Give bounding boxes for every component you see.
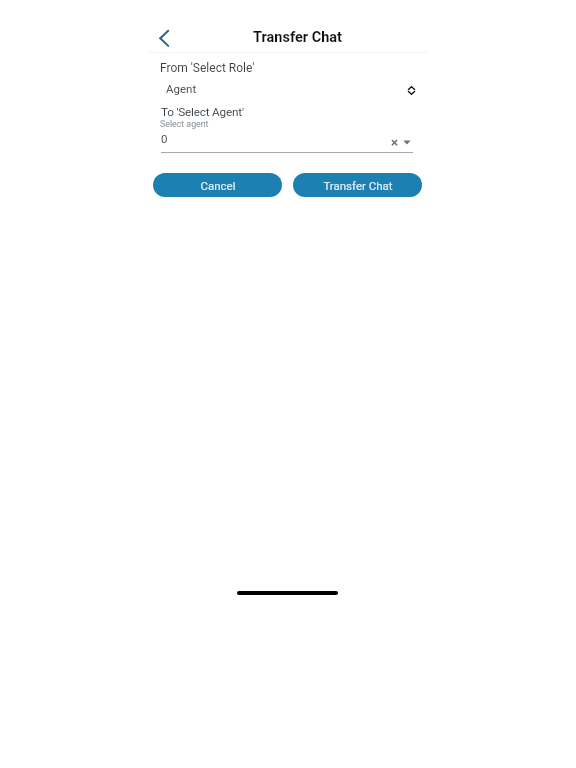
button[interactable]: Back xyxy=(152,26,176,50)
staticText: 0 xyxy=(161,132,168,145)
button[interactable]: Agent xyxy=(160,78,420,98)
staticText: Select agent xyxy=(160,119,209,129)
staticText: Transfer Chat xyxy=(323,179,393,192)
staticText: Cancel xyxy=(200,179,236,192)
staticText: Transfer Chat xyxy=(253,29,343,46)
button[interactable]: Transfer Chat xyxy=(293,173,422,197)
staticText: Agent xyxy=(166,82,197,95)
staticText: To 'Select Agent' xyxy=(161,105,244,119)
button[interactable]: Clear selection xyxy=(387,135,401,149)
button[interactable]: Open agent dropdown xyxy=(400,135,414,149)
button[interactable]: Cancel xyxy=(153,173,282,197)
staticText: From 'Select Role' xyxy=(160,61,255,75)
